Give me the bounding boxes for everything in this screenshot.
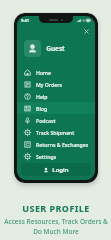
button[interactable]: Blog xyxy=(17,102,95,114)
staticText: Returns & Exchanges xyxy=(36,141,89,148)
staticText: Access Resources, Track Orders & xyxy=(4,217,108,226)
staticText: Do Much More xyxy=(33,227,79,236)
staticText: USER PROFILE xyxy=(22,202,90,214)
staticText: Help xyxy=(36,93,48,100)
button[interactable]: Close xyxy=(82,27,91,36)
staticText: Home xyxy=(36,69,51,76)
staticText: Login xyxy=(52,166,69,174)
button[interactable]: Login xyxy=(21,163,91,176)
button[interactable]: Home xyxy=(17,66,95,78)
button[interactable]: My Orders xyxy=(17,78,95,90)
staticText: Blog xyxy=(36,105,48,112)
staticText: Track Shipment xyxy=(36,129,75,136)
button[interactable]: Track Shipment xyxy=(17,126,95,138)
button[interactable]: Help xyxy=(17,90,95,102)
staticText: Settings xyxy=(36,153,57,160)
button[interactable]: Guest xyxy=(17,38,95,59)
button[interactable]: Settings xyxy=(17,150,95,162)
staticText: 9:41 xyxy=(21,18,29,23)
button[interactable]: Returns & Exchanges xyxy=(17,138,95,150)
staticText: My Orders xyxy=(36,81,62,88)
staticText: Podcast xyxy=(36,117,56,124)
staticText: Guest xyxy=(46,44,65,53)
button[interactable]: Podcast xyxy=(17,114,95,126)
